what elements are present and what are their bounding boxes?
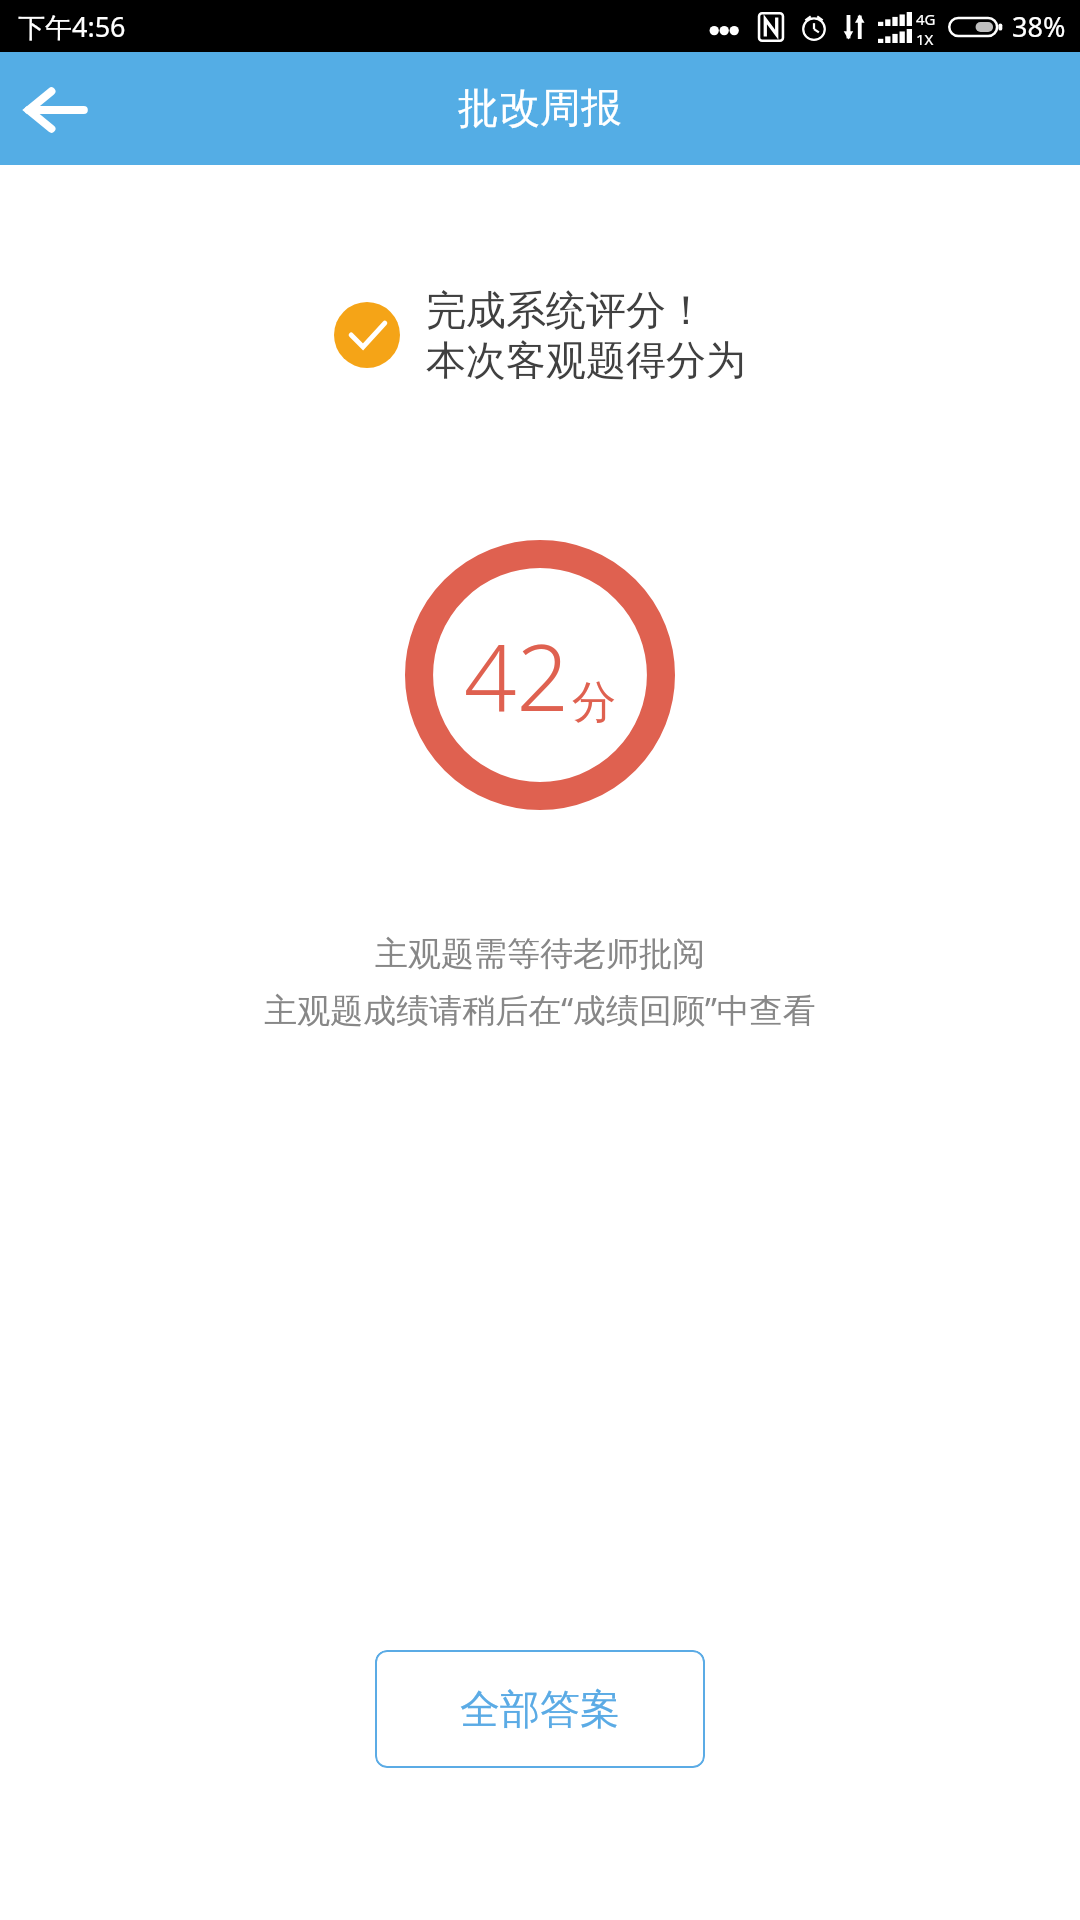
staticText: 全部答案 [460, 1684, 620, 1734]
staticText: 批改周报 [458, 83, 622, 135]
staticText: 本次客观题得分为 [426, 335, 746, 385]
staticText: 主观题成绩请稍后在“成绩回顾”中查看 [264, 987, 816, 1032]
staticText: 主观题需等待老师批阅 [375, 933, 705, 975]
staticText: 4G [916, 9, 936, 29]
staticText: 分 [572, 675, 616, 730]
staticText: 42 [464, 613, 570, 738]
staticText: 完成系统评分！ [426, 285, 706, 335]
staticText: 38% [1012, 8, 1066, 45]
button[interactable]: 全部答案 [375, 1650, 705, 1768]
button[interactable]: Back [0, 52, 110, 165]
staticText: 下午4:56 [18, 8, 126, 45]
staticText: 1X [916, 29, 934, 45]
